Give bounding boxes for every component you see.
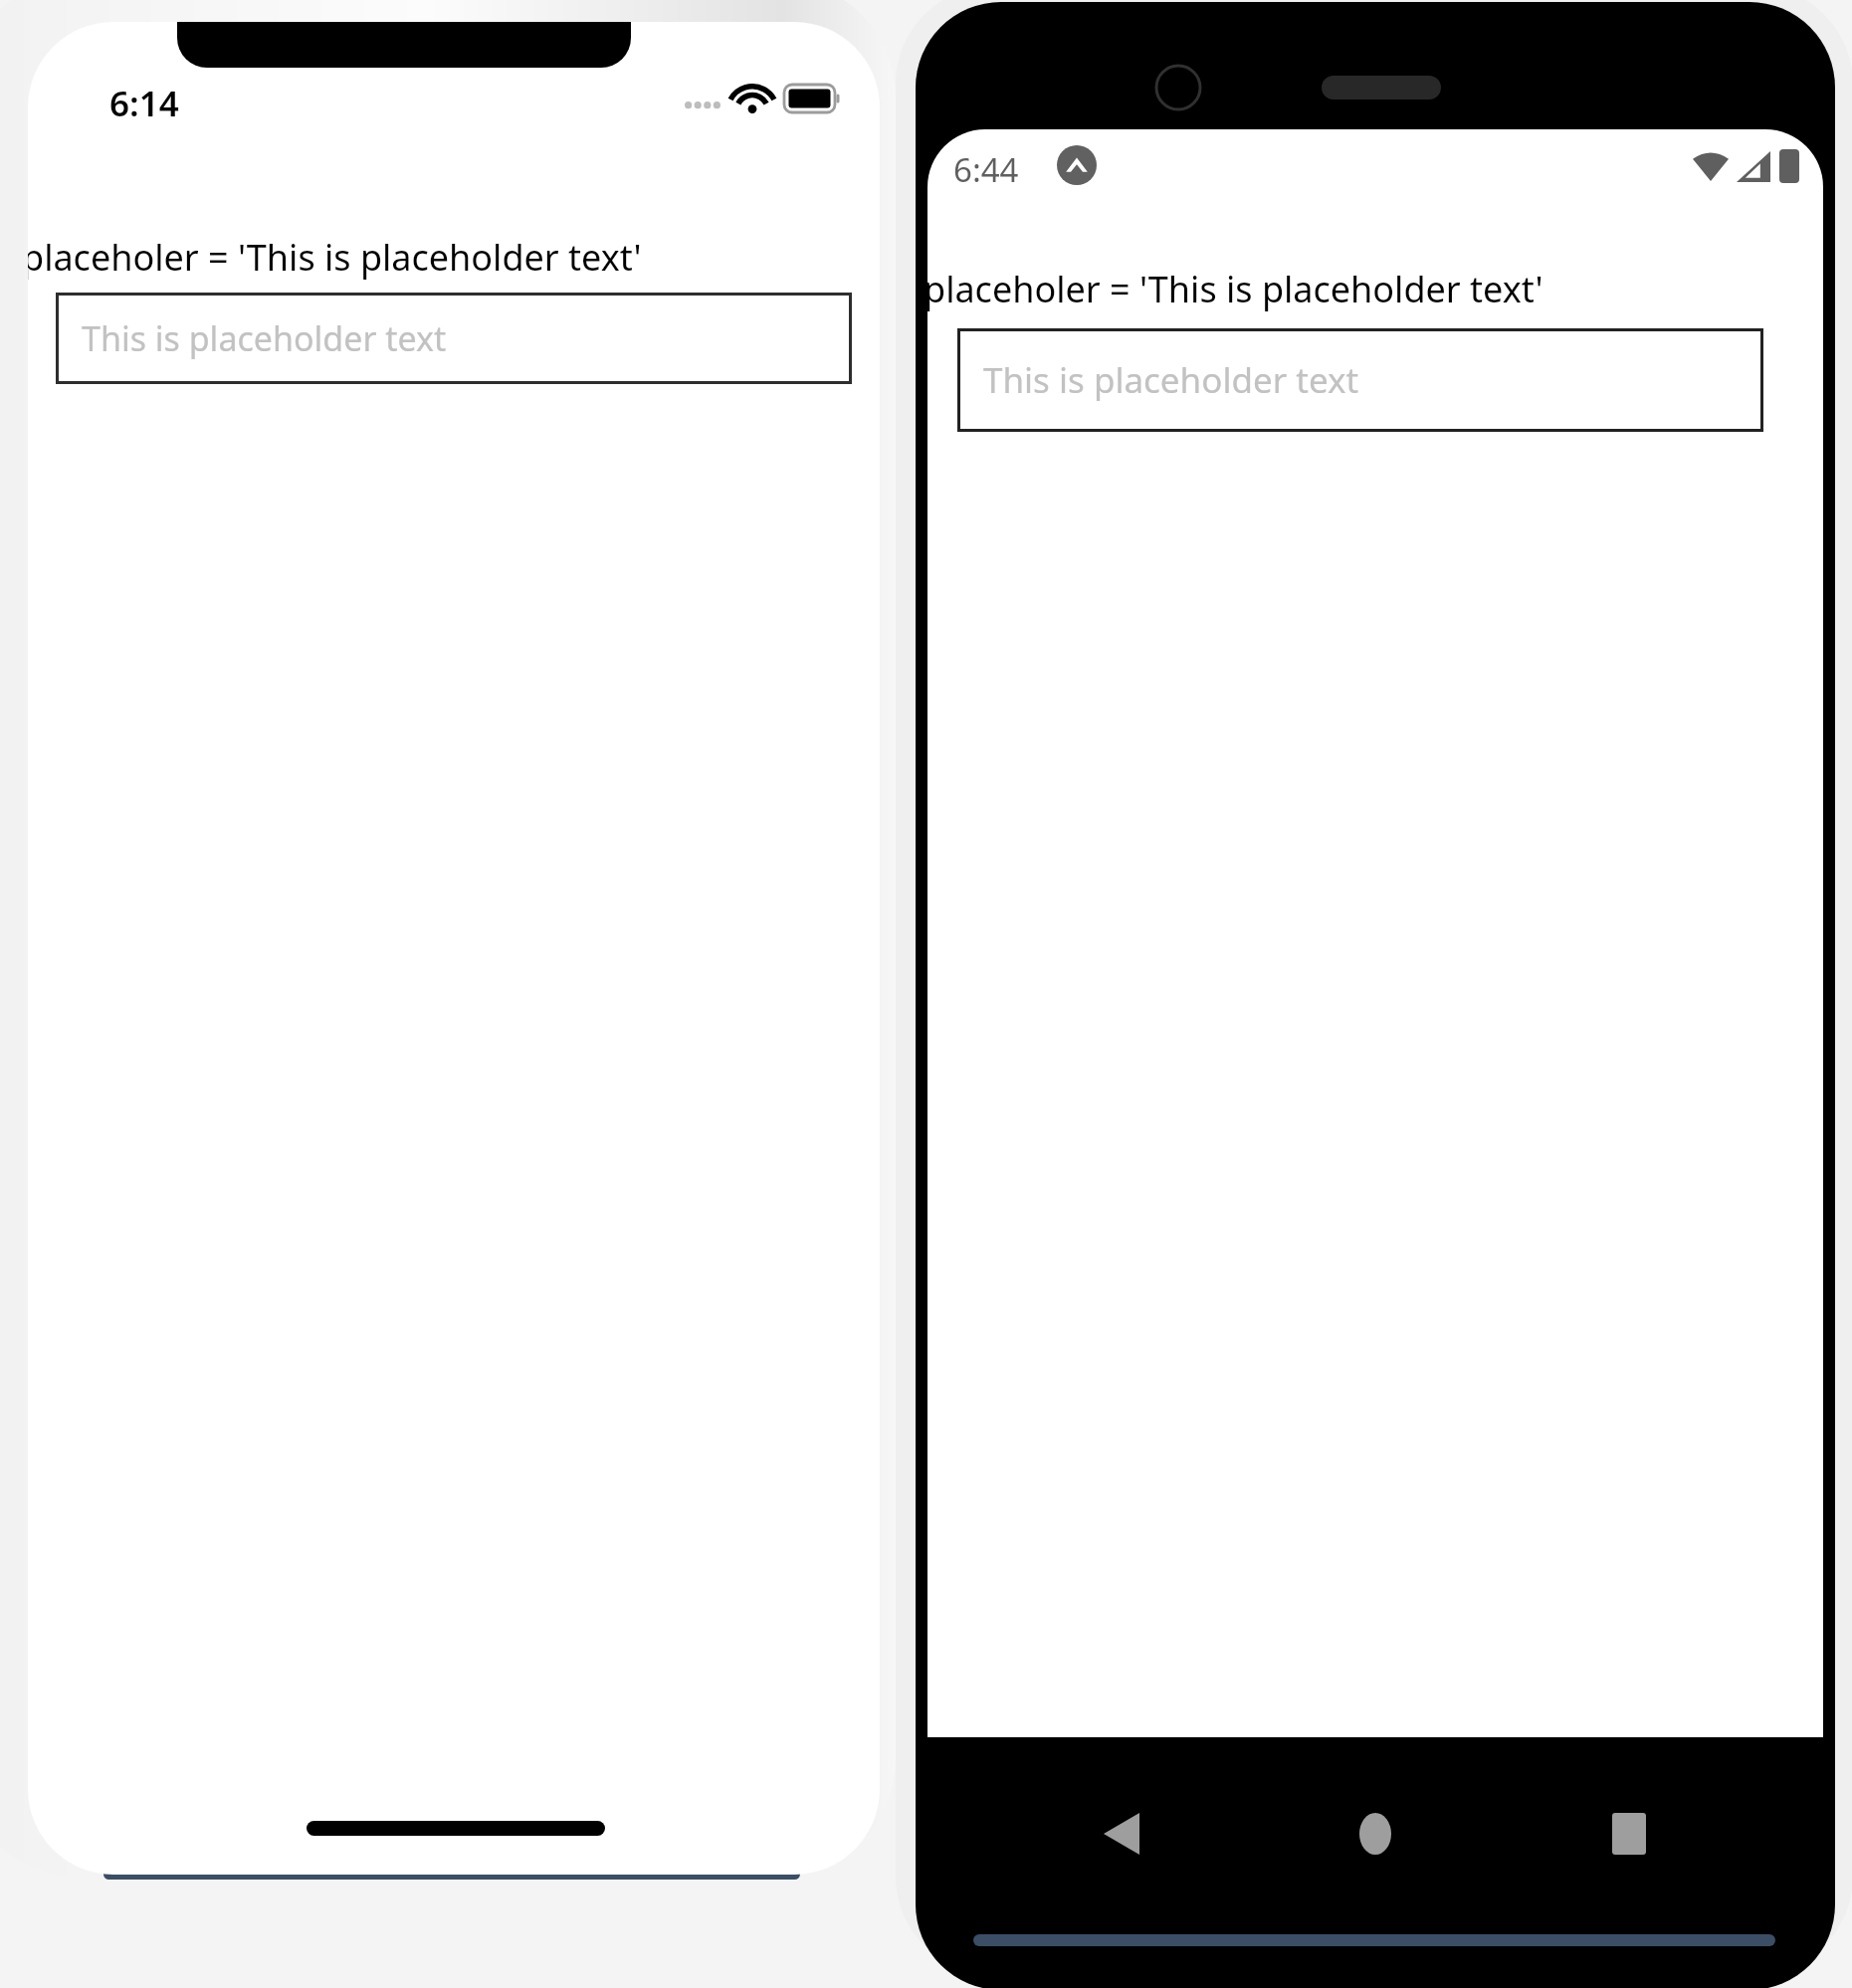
staticText: 6:44 bbox=[953, 147, 1019, 192]
staticText: placeholer = 'This is placeholder text' bbox=[28, 233, 642, 282]
staticText: placeholer = 'This is placeholder text' bbox=[927, 265, 1543, 313]
staticText: This is placeholder text bbox=[82, 315, 447, 361]
button[interactable]: This is placeholder text bbox=[56, 293, 852, 384]
button[interactable]: This is placeholder text bbox=[957, 328, 1763, 432]
button[interactable]: Recent apps bbox=[1569, 1789, 1689, 1879]
button[interactable]: Home bbox=[1316, 1789, 1435, 1879]
staticText: 6:14 bbox=[109, 80, 179, 127]
button[interactable]: Back bbox=[1062, 1789, 1181, 1879]
staticText: This is placeholder text bbox=[983, 356, 1359, 404]
